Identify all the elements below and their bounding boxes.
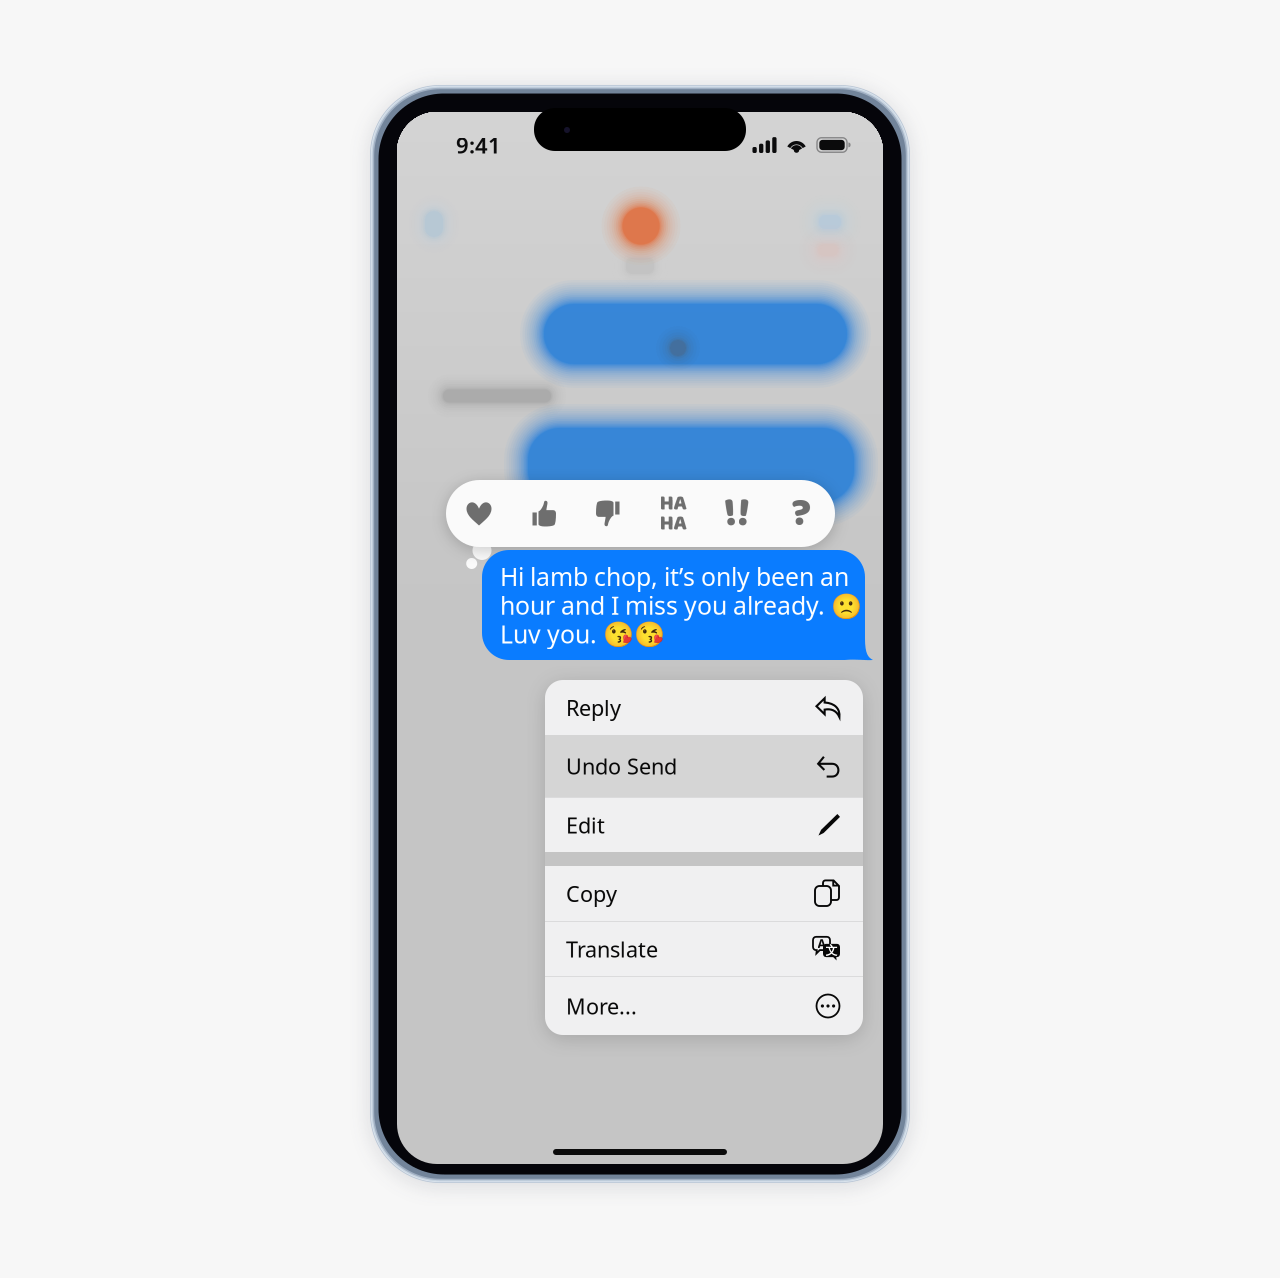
staticText: ! — [738, 481, 750, 546]
button[interactable]: Thumbs up — [512, 480, 576, 547]
button[interactable]: Home — [553, 1149, 727, 1155]
button[interactable]: Translate — [545, 922, 863, 976]
button[interactable]: Thumbs down — [576, 480, 640, 547]
staticText: Undo Send — [566, 751, 677, 781]
button[interactable]: Haha — [640, 480, 706, 547]
button[interactable]: Reply — [545, 680, 863, 735]
button[interactable]: Copy — [545, 866, 863, 921]
button[interactable]: Undo Send — [545, 735, 863, 797]
button[interactable]: Love — [446, 480, 512, 547]
staticText: Hi lamb chop, it’s only been an — [500, 562, 849, 591]
button[interactable]: Edit — [545, 798, 863, 852]
button[interactable]: Question mark — [768, 480, 835, 547]
staticText: hour and I miss you already. 🙁 — [500, 591, 862, 619]
button[interactable]: More... — [545, 977, 863, 1035]
staticText: Edit — [566, 810, 605, 840]
staticText: HA — [659, 490, 686, 516]
staticText: Reply — [566, 693, 621, 722]
staticText: Copy — [566, 879, 617, 908]
staticText: ? — [791, 481, 811, 546]
staticText: 文 — [825, 943, 837, 958]
staticText: HA — [659, 510, 686, 536]
staticText: Luv you. 😘😘 — [500, 619, 665, 648]
staticText: Translate — [566, 934, 658, 964]
staticText: More... — [566, 991, 637, 1021]
staticText: A — [817, 935, 825, 951]
staticText: 9:41 — [456, 130, 501, 160]
button[interactable]: Exclamation — [706, 480, 768, 547]
staticText: ! — [724, 481, 736, 546]
